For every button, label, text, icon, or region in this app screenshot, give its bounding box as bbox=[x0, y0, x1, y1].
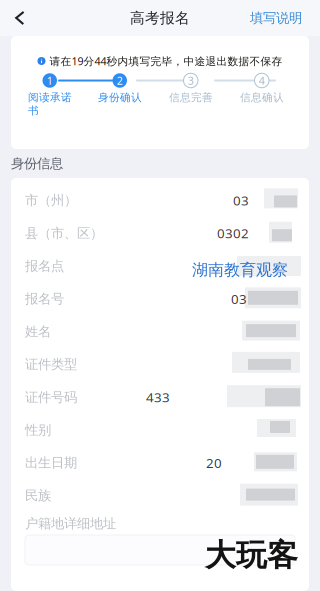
staticText: 请在19分44秒内填写完毕，中途退出数据不保存 bbox=[49, 54, 282, 68]
staticText: 1 bbox=[47, 73, 53, 88]
staticText: 县（市、区） bbox=[25, 225, 103, 241]
staticText: 03 bbox=[233, 191, 249, 209]
staticText: 433 bbox=[146, 388, 170, 406]
staticText: 性别 bbox=[25, 422, 51, 438]
staticText: 湖南教育观察 bbox=[192, 260, 288, 280]
staticText: 填写说明 bbox=[250, 10, 302, 26]
staticText: 身份信息 bbox=[11, 155, 63, 172]
staticText: 市（州） bbox=[25, 192, 77, 209]
button[interactable]: Back bbox=[0, 0, 34, 36]
button[interactable]: 填写说明 bbox=[250, 0, 320, 36]
staticText: 信息完善 bbox=[169, 91, 213, 104]
staticText: 民族 bbox=[25, 487, 51, 504]
staticText: 户籍地详细地址 bbox=[25, 515, 116, 532]
staticText: 证件类型 bbox=[25, 356, 77, 373]
staticText: 20 bbox=[206, 454, 222, 472]
staticText: 身份确认 bbox=[98, 91, 142, 104]
staticText: 证件号码 bbox=[25, 389, 77, 405]
staticText: 阅读承诺书 bbox=[28, 91, 72, 117]
staticText: 高考报名 bbox=[130, 9, 190, 27]
staticText: 姓名 bbox=[25, 323, 51, 340]
staticText: 大玩客 bbox=[205, 536, 298, 574]
staticText: 报名点 bbox=[25, 258, 64, 274]
staticText: 报名号 bbox=[25, 291, 64, 307]
staticText: 出生日期 bbox=[25, 455, 77, 471]
staticText: 0302 bbox=[217, 224, 249, 242]
staticText: 2 bbox=[117, 73, 123, 88]
staticText: 3 bbox=[188, 73, 194, 88]
staticText: 03 bbox=[231, 290, 247, 308]
staticText: 信息确认 bbox=[240, 91, 284, 104]
staticText: 4 bbox=[259, 73, 265, 88]
